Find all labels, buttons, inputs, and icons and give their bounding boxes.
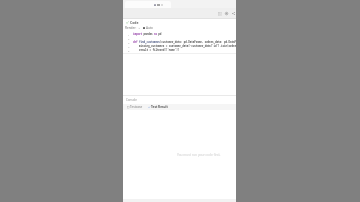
button[interactable]: Settings	[223, 10, 229, 16]
staticText: Auto	[146, 26, 153, 30]
staticText: Testcase	[130, 105, 143, 109]
staticText: You must run your code first.	[177, 153, 221, 157]
staticText: import pandas as pd	[133, 32, 162, 36]
button[interactable]: Testcase	[126, 104, 144, 110]
button[interactable]: Render:	[125, 26, 140, 30]
staticText: Render:	[125, 26, 137, 30]
staticText: Code	[130, 20, 139, 24]
button[interactable]: Auto	[143, 26, 153, 30]
staticText: result = filtered[['name']]	[133, 48, 180, 52]
staticText: def find_customers(customer_data: pd.Dat…	[133, 40, 236, 44]
button[interactable]	[125, 1, 171, 8]
staticText: 3	[128, 41, 130, 44]
staticText: Test Result	[151, 105, 168, 109]
button[interactable]: Test Result	[147, 104, 169, 110]
button[interactable]: Share	[230, 10, 236, 16]
button[interactable]: Code	[126, 20, 139, 24]
staticText: 2	[128, 37, 130, 40]
button[interactable]: Apps	[216, 10, 222, 16]
staticText: 5	[128, 49, 130, 52]
staticText: 4	[128, 45, 130, 48]
staticText: missing_customers = customer_data[~custo…	[133, 44, 236, 48]
staticText: 1	[128, 33, 130, 36]
button[interactable]: Console	[126, 98, 137, 102]
